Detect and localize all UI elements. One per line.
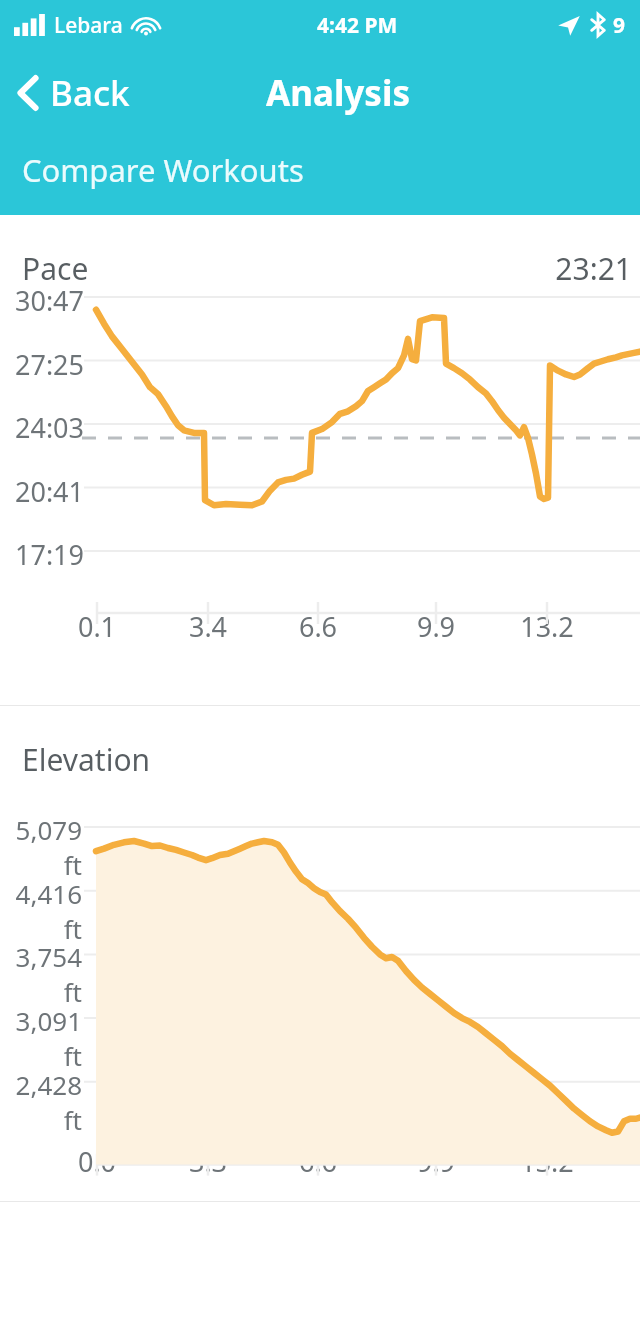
staticText: 0.0 [57,1143,137,1180]
staticText: 3,754 ft [0,939,82,1009]
button[interactable]: Back [0,61,148,125]
staticText: 0.1 [57,608,137,645]
staticText: 27:25 [0,346,84,383]
staticText: 9.9 [396,608,476,645]
staticText: 23:21 [0,248,632,289]
staticText: 13.2 [507,1143,587,1180]
staticText: 30:47 [0,282,84,319]
staticText: 3,091 ft [0,1003,82,1073]
staticText: Pace [22,248,89,289]
staticText: 2,428 ft [0,1067,82,1137]
staticText: 13.2 [507,608,587,645]
staticText: 3.4 [168,608,248,645]
staticText: 6.6 [278,608,358,645]
staticText: 9.9 [396,1143,476,1180]
staticText: Back [50,69,130,117]
staticText: 17:19 [0,536,84,573]
staticText: Analysis [266,69,410,117]
staticText: 24:03 [0,409,84,446]
staticText: 9 [613,11,626,40]
staticText: 5,079 ft [0,812,82,882]
button[interactable]: Compare Workouts [22,145,304,195]
staticText: 4:42 PM [317,11,398,40]
staticText: 6.6 [278,1143,358,1180]
staticText: 3.3 [168,1143,248,1180]
staticText: 4,416 ft [0,876,82,946]
staticText: Elevation [22,739,151,780]
staticText: 20:41 [0,473,84,510]
staticText: Lebara [54,11,123,40]
